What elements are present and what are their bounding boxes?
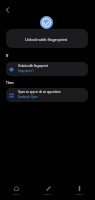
staticText: Facebook: Open	[18, 95, 38, 99]
staticText: Home	[13, 192, 20, 195]
button[interactable]: Unlock with fingerprint	[6, 62, 88, 76]
button[interactable]: Devices	[64, 186, 94, 195]
staticText: Routines	[43, 192, 53, 195]
staticText: If	[6, 54, 9, 58]
button[interactable]: Open an app or do an app action	[6, 88, 88, 102]
button[interactable]: Home	[1, 186, 31, 195]
button[interactable]: Back	[1, 4, 13, 16]
button[interactable]: Routines	[33, 186, 63, 195]
staticText: Fingerprint 1	[18, 69, 34, 73]
staticText: Then	[6, 81, 14, 85]
button[interactable]: Unlock with fingerprint	[6, 29, 88, 48]
staticText: Unlock with fingerprint	[18, 64, 48, 68]
staticText: Devices	[75, 192, 84, 195]
staticText: Open an app or do an app action	[18, 90, 61, 94]
staticText: Unlock with fingerprint	[25, 37, 68, 42]
